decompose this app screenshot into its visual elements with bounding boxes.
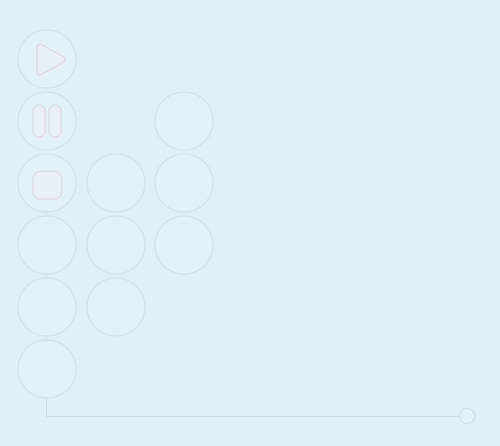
button[interactable]: Option C1 [155,92,213,150]
button[interactable]: Step 5 [18,278,76,336]
button[interactable]: Option B3 [87,278,145,336]
button[interactable]: Step 6 [18,340,76,398]
button[interactable]: Play [18,30,76,88]
button[interactable]: Stop [18,154,76,212]
button[interactable]: Step 4 [18,216,76,274]
button[interactable]: Option C3 [155,216,213,274]
button[interactable]: Option B2 [87,216,145,274]
button[interactable]: Pause [18,92,76,150]
button[interactable]: Option B1 [87,154,145,212]
button[interactable]: Scrubber [459,408,474,423]
button[interactable]: Option C2 [155,154,213,212]
